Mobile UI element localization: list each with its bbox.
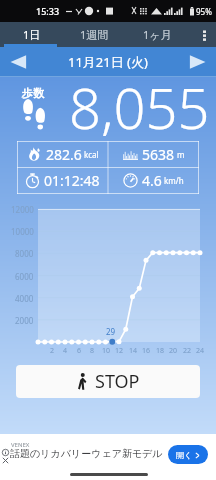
staticText: 8,055 (69, 69, 210, 145)
staticText: 2000 (15, 315, 34, 326)
staticText: kcal (84, 149, 99, 160)
staticText: 4 (63, 346, 68, 356)
button[interactable]: 1週間 (63, 22, 126, 47)
button[interactable]: 5638 (108, 141, 199, 167)
staticText: 5638 (142, 145, 175, 164)
staticText: 15:33 (36, 5, 60, 17)
staticText: 20 (169, 346, 178, 356)
staticText: 10 (102, 346, 111, 356)
button[interactable]: 01:12:48 (17, 167, 108, 194)
staticText: m (177, 149, 185, 160)
button[interactable]: 4.6 (108, 167, 199, 194)
staticText: 1週間 (80, 27, 109, 42)
staticText: 95% (196, 6, 212, 17)
staticText: 16 (142, 346, 151, 356)
staticText: 歩数 (22, 86, 44, 100)
staticText: km/h (164, 175, 184, 186)
button[interactable]: Next day (179, 47, 216, 77)
staticText: 14 (129, 346, 138, 356)
button[interactable]: More options (192, 22, 216, 47)
staticText: 22 (183, 346, 192, 356)
staticText: 8000 (15, 248, 34, 259)
staticText: STOP (95, 369, 140, 394)
staticText: 4.6 (142, 171, 162, 190)
button[interactable]: 開く (168, 445, 208, 464)
staticText: 2 (50, 346, 55, 356)
button[interactable]: 282.6 (17, 141, 108, 167)
staticText: 12 (115, 346, 124, 356)
button[interactable]: Previous day (0, 47, 37, 77)
staticText: 1日 (23, 27, 41, 42)
staticText: 6 (77, 346, 82, 356)
staticText: 29 (106, 326, 116, 337)
button[interactable]: 1日 (0, 22, 63, 47)
staticText: 話題のリカバリーウェア新モデル (10, 447, 163, 460)
staticText: 4000 (15, 293, 34, 304)
staticText: 24 (196, 346, 205, 356)
staticText: 8 (90, 346, 95, 356)
staticText: 12000 (11, 204, 34, 215)
staticText: 10000 (11, 226, 34, 237)
staticText: 282.6 (46, 145, 82, 164)
staticText: 6000 (15, 271, 34, 282)
staticText: 開く (176, 450, 193, 460)
staticText: 01:12:48 (44, 171, 100, 190)
staticText: 1ヶ月 (143, 27, 172, 42)
staticText: VENEX (11, 441, 30, 449)
button[interactable]: STOP (16, 365, 200, 398)
button[interactable]: 1ヶ月 (126, 22, 189, 47)
staticText: 11月21日 (火) (68, 53, 148, 71)
staticText: 18 (156, 346, 165, 356)
